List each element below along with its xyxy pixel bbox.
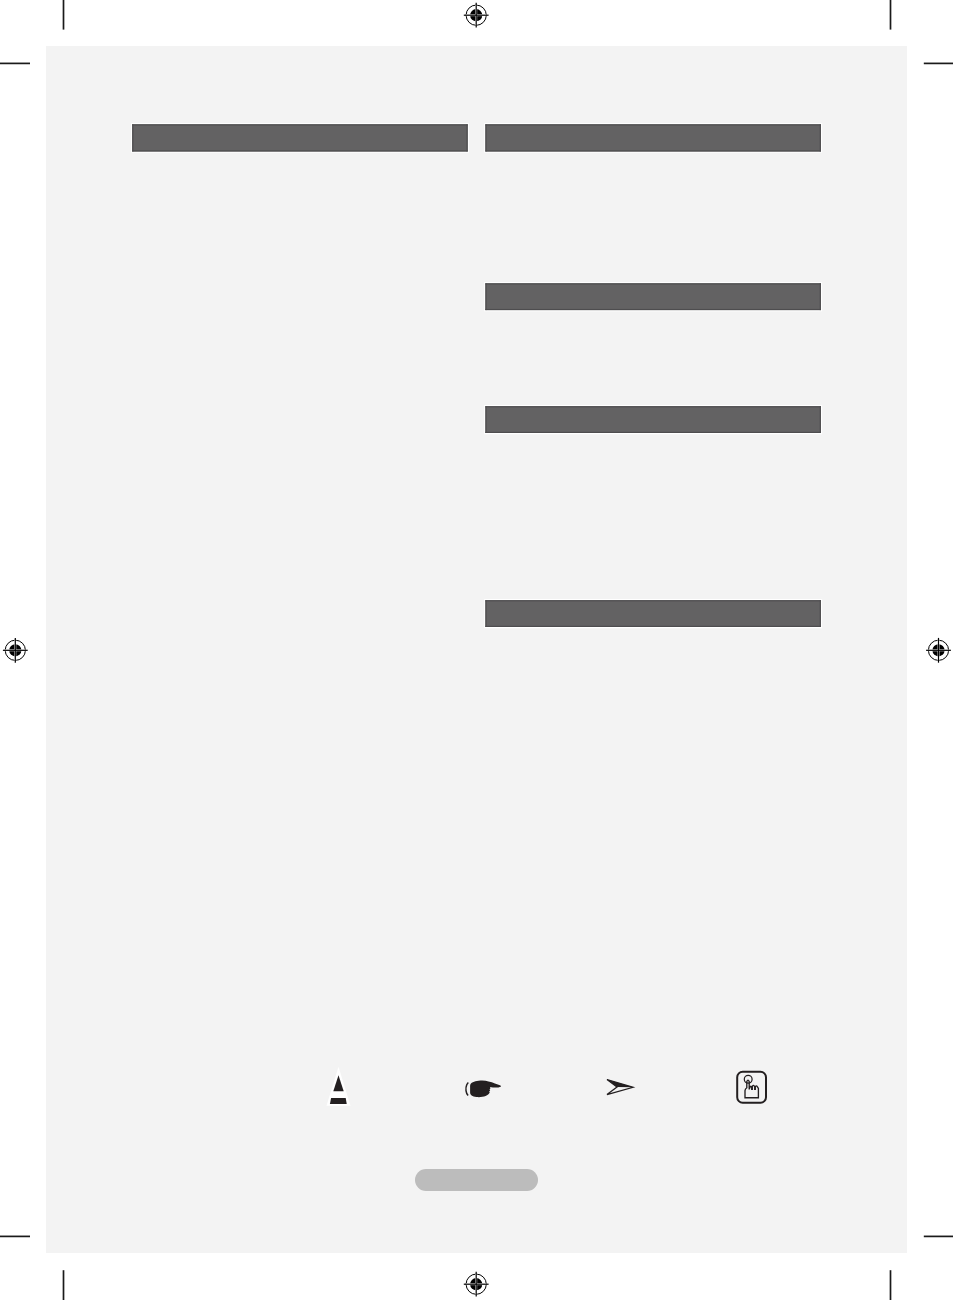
button[interactable]: Page: [415, 1169, 538, 1191]
button[interactable]: Send: [600, 1074, 640, 1100]
button[interactable]: Note: [462, 1074, 506, 1103]
button[interactable]: Caution: [322, 1062, 356, 1110]
button[interactable]: Tap: [734, 1068, 769, 1106]
